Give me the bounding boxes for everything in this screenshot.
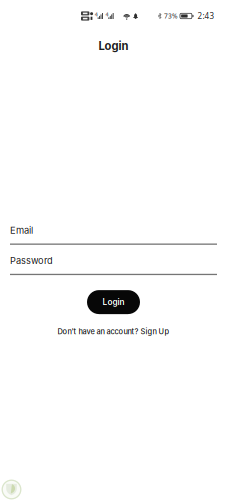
staticText: Login (98, 39, 128, 53)
button[interactable]: Login (87, 290, 140, 314)
staticText: 4 (105, 11, 108, 18)
staticText: Email (10, 225, 33, 236)
button[interactable]: Don't have an account? Sign Up (57, 327, 169, 336)
staticText: 4 (95, 11, 98, 18)
staticText: Don't have an account? Sign Up (57, 327, 169, 336)
staticText: 73% (164, 12, 178, 20)
staticText: 2:43 (197, 11, 214, 21)
staticText: Password (10, 255, 53, 266)
staticText: Login (102, 297, 124, 307)
